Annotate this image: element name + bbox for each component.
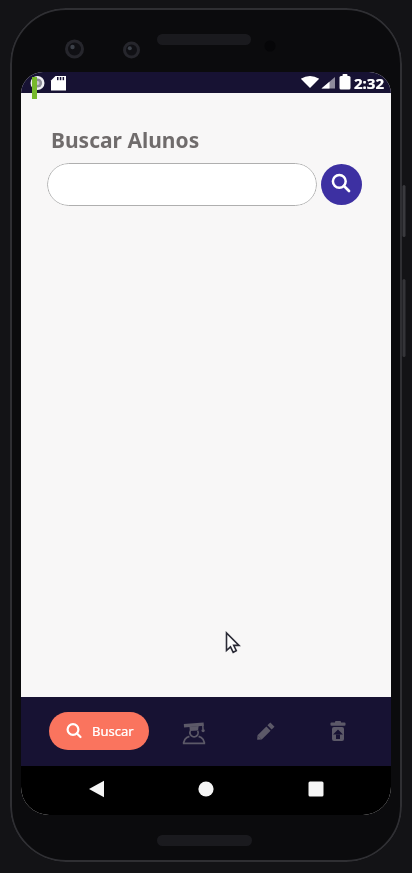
button[interactable] xyxy=(47,163,317,206)
staticText: 2:32 xyxy=(354,73,384,93)
button[interactable] xyxy=(77,769,117,809)
button[interactable] xyxy=(170,708,218,756)
button[interactable] xyxy=(321,164,362,205)
button[interactable] xyxy=(296,769,336,809)
staticText: Buscar xyxy=(92,722,134,740)
button[interactable]: Buscar xyxy=(49,712,149,750)
button[interactable] xyxy=(242,707,290,755)
staticText: Buscar Alunos xyxy=(51,126,200,155)
button[interactable] xyxy=(186,769,226,809)
button[interactable] xyxy=(314,707,362,755)
